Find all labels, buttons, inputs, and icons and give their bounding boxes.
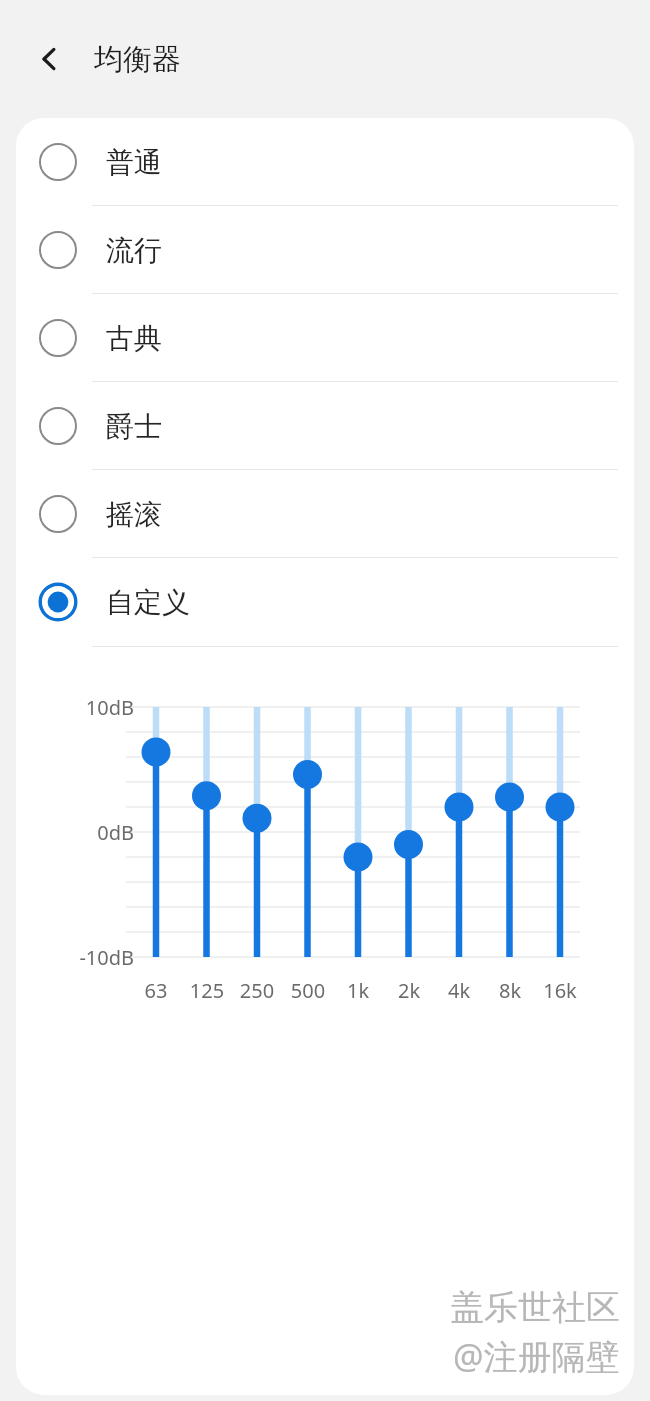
- button[interactable]: Back: [22, 31, 78, 87]
- button[interactable]: 自定义: [16, 558, 634, 646]
- staticText: 摇滚: [106, 497, 162, 532]
- staticText: 盖乐世社区: [450, 1286, 620, 1329]
- staticText: @注册隔壁: [453, 1333, 620, 1379]
- button[interactable]: 摇滚: [16, 470, 634, 558]
- button[interactable]: 流行: [16, 206, 634, 294]
- staticText: 500: [280, 977, 336, 1004]
- staticText: 250: [229, 977, 285, 1004]
- staticText: 2k: [381, 977, 437, 1004]
- staticText: 普通: [106, 145, 162, 180]
- staticText: 爵士: [106, 409, 162, 444]
- staticText: 10dB: [36, 694, 134, 721]
- staticText: 0dB: [36, 819, 134, 846]
- staticText: 1k: [330, 977, 386, 1004]
- staticText: 16k: [532, 977, 588, 1004]
- staticText: 流行: [106, 233, 162, 268]
- staticText: 自定义: [106, 585, 190, 620]
- staticText: 4k: [431, 977, 487, 1004]
- button[interactable]: 古典: [16, 294, 634, 382]
- staticText: 125: [179, 977, 235, 1004]
- staticText: -10dB: [36, 944, 134, 971]
- staticText: 古典: [106, 321, 162, 356]
- button[interactable]: 普通: [16, 118, 634, 206]
- staticText: 63: [128, 977, 184, 1004]
- staticText: 均衡器: [94, 41, 181, 78]
- staticText: 8k: [482, 977, 538, 1004]
- button[interactable]: 爵士: [16, 382, 634, 470]
